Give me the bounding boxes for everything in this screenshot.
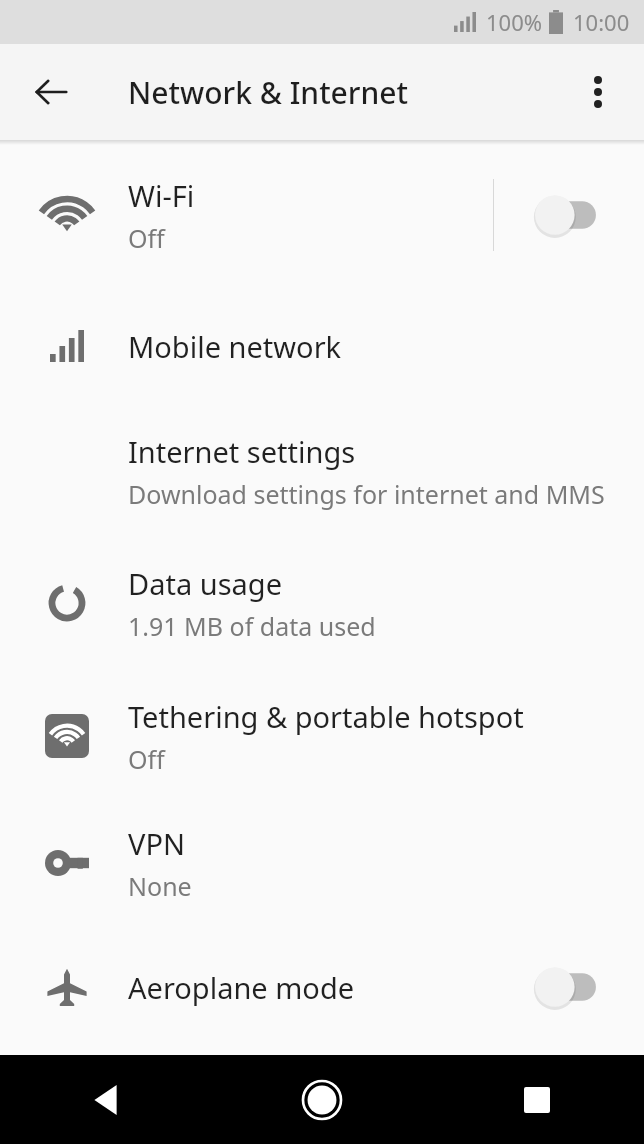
staticText: 1.91 MB of data used [128,609,376,643]
button[interactable]: Aeroplane mode [0,925,644,1049]
button[interactable]: Home [214,1055,429,1144]
staticText: Internet settings [128,432,356,471]
button[interactable]: Internet settings [0,407,644,535]
staticText: Tethering & portable hotspot [128,697,524,736]
staticText: Download settings for internet and MMS [128,477,605,511]
staticText: 100% [486,7,543,37]
button[interactable]: Tethering & portable hotspot [0,671,644,801]
staticText: 10:00 [573,7,630,37]
button[interactable]: Mobile network [0,285,644,407]
staticText: None [128,869,192,903]
staticText: Wi-Fi [128,176,195,215]
staticText: Network & Internet [128,72,409,113]
staticText: Mobile network [128,327,342,366]
staticText: Off [128,221,165,255]
button[interactable]: Wi-Fi [0,145,644,285]
button[interactable]: Recent apps [429,1055,644,1144]
button[interactable]: Toggle [526,964,602,1010]
button[interactable]: Back [22,63,80,121]
button[interactable]: More options [570,64,626,120]
button[interactable]: Data usage [0,535,644,671]
staticText: VPN [128,824,185,863]
staticText: Aeroplane mode [128,968,355,1007]
staticText: Off [128,742,165,776]
button[interactable]: Back [0,1055,214,1144]
staticText: Data usage [128,564,282,603]
button[interactable]: Toggle [526,192,602,238]
button[interactable]: VPN [0,801,644,925]
